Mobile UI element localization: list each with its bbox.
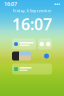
staticText: 16:07 xyxy=(12,13,52,34)
staticText: ••• xyxy=(54,0,60,8)
staticText: Friday, 6 September xyxy=(12,8,51,13)
staticText: 16:07 xyxy=(4,0,17,8)
